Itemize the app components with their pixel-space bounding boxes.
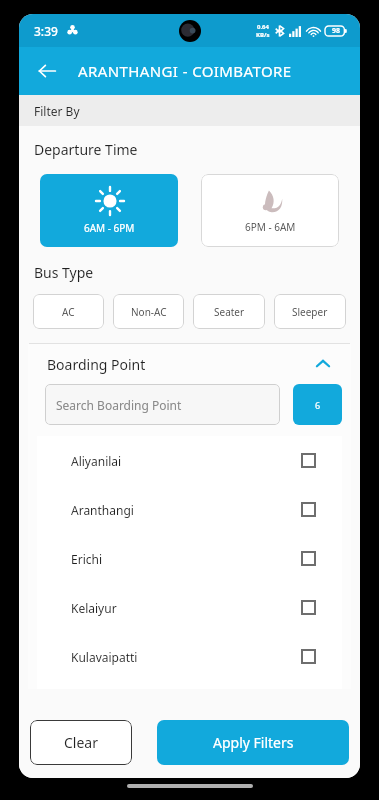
- staticText: Bus Type: [34, 263, 94, 282]
- button[interactable]: Boarding Point: [28, 344, 351, 384]
- button[interactable]: Kelaiyur: [37, 583, 342, 632]
- staticText: Clear: [64, 733, 98, 752]
- staticText: Boarding Point: [47, 355, 146, 374]
- staticText: AC: [62, 305, 75, 319]
- button[interactable]: Erichi: [37, 534, 342, 583]
- staticText: Seater: [214, 305, 245, 319]
- staticText: Kulavaipatti: [71, 649, 138, 665]
- button[interactable]: Kulavaipatti: [37, 632, 342, 681]
- staticText: Aliyanilai: [71, 453, 122, 469]
- staticText: Kelaiyur: [71, 600, 117, 616]
- staticText: Erichi: [71, 551, 102, 567]
- button[interactable]: Search Boarding Point: [45, 384, 280, 425]
- staticText: 6: [315, 399, 321, 411]
- staticText: Search Boarding Point: [56, 397, 182, 413]
- staticText: 98: [332, 26, 341, 36]
- staticText: Departure Time: [34, 140, 138, 159]
- other: Collapse: [311, 352, 335, 376]
- staticText: KB/s: [256, 31, 270, 39]
- button[interactable]: Non-AC: [113, 294, 184, 329]
- button[interactable]: AC: [33, 294, 104, 329]
- button[interactable]: Apply Filters: [157, 720, 349, 765]
- button[interactable]: Clear: [30, 720, 132, 765]
- button[interactable]: Back: [27, 51, 67, 91]
- staticText: ARANTHANGI - COIMBATORE: [78, 61, 292, 81]
- button[interactable]: Sleeper: [274, 294, 346, 329]
- staticText: Non-AC: [131, 305, 167, 319]
- staticText: 6PM - 6AM: [245, 220, 296, 234]
- staticText: Filter By: [34, 103, 80, 119]
- staticText: Sleeper: [292, 305, 328, 319]
- staticText: Aranthangi: [71, 502, 134, 518]
- button[interactable]: Aliyanilai: [37, 436, 342, 485]
- button[interactable]: Seater: [193, 294, 265, 329]
- staticText: 3:39: [34, 23, 58, 39]
- staticText: 0.64: [257, 23, 269, 31]
- staticText: 6AM - 6PM: [84, 221, 135, 235]
- button[interactable]: Aranthangi: [37, 485, 342, 534]
- button[interactable]: 6PM - 6AM: [201, 174, 339, 247]
- button[interactable]: 6AM - 6PM: [40, 174, 178, 247]
- staticText: Apply Filters: [213, 733, 294, 752]
- button[interactable]: 6: [293, 384, 342, 425]
